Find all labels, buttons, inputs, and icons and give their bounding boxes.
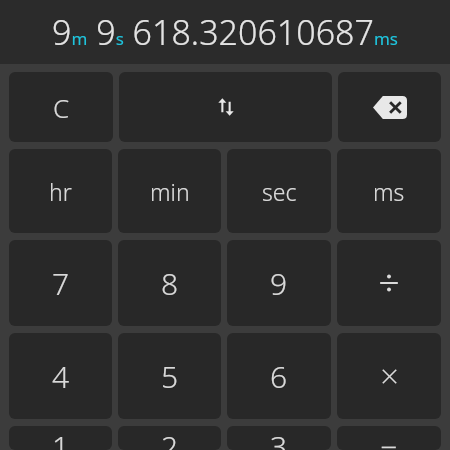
button[interactable]: 2 <box>118 426 221 450</box>
button[interactable]: 9 <box>227 240 331 326</box>
staticText: − <box>380 426 398 450</box>
staticText: min <box>150 176 190 207</box>
staticText: 7 <box>52 263 70 304</box>
button[interactable]: Divide <box>337 240 441 326</box>
staticText: ms <box>373 176 405 207</box>
button[interactable]: 5 <box>118 333 221 419</box>
button[interactable]: Multiply <box>337 333 441 419</box>
staticText: C <box>53 90 70 125</box>
staticText: 5 <box>161 356 179 397</box>
button[interactable]: 7 <box>9 240 112 326</box>
button[interactable]: 8 <box>118 240 221 326</box>
button[interactable]: Delete <box>338 72 441 142</box>
staticText: 1 <box>52 426 70 450</box>
button[interactable]: 1 <box>9 426 112 450</box>
staticText: 9 <box>270 263 288 304</box>
button[interactable]: C <box>9 72 113 142</box>
button[interactable]: ms <box>337 149 441 233</box>
staticText: 4 <box>52 356 70 397</box>
button[interactable]: − <box>337 426 441 450</box>
staticText: 3 <box>270 426 288 450</box>
button[interactable]: Swap units <box>119 72 332 142</box>
staticText: 6 <box>270 356 288 397</box>
button[interactable]: hr <box>9 149 112 233</box>
button[interactable]: sec <box>227 149 331 233</box>
staticText: 9m 9s 618.320610687ms <box>52 9 398 55</box>
button[interactable]: 3 <box>227 426 331 450</box>
staticText: sec <box>262 176 297 207</box>
button[interactable]: 6 <box>227 333 331 419</box>
staticText: 8 <box>161 263 179 304</box>
staticText: hr <box>49 176 72 207</box>
button[interactable]: min <box>118 149 221 233</box>
staticText: 2 <box>161 426 179 450</box>
button[interactable]: 4 <box>9 333 112 419</box>
